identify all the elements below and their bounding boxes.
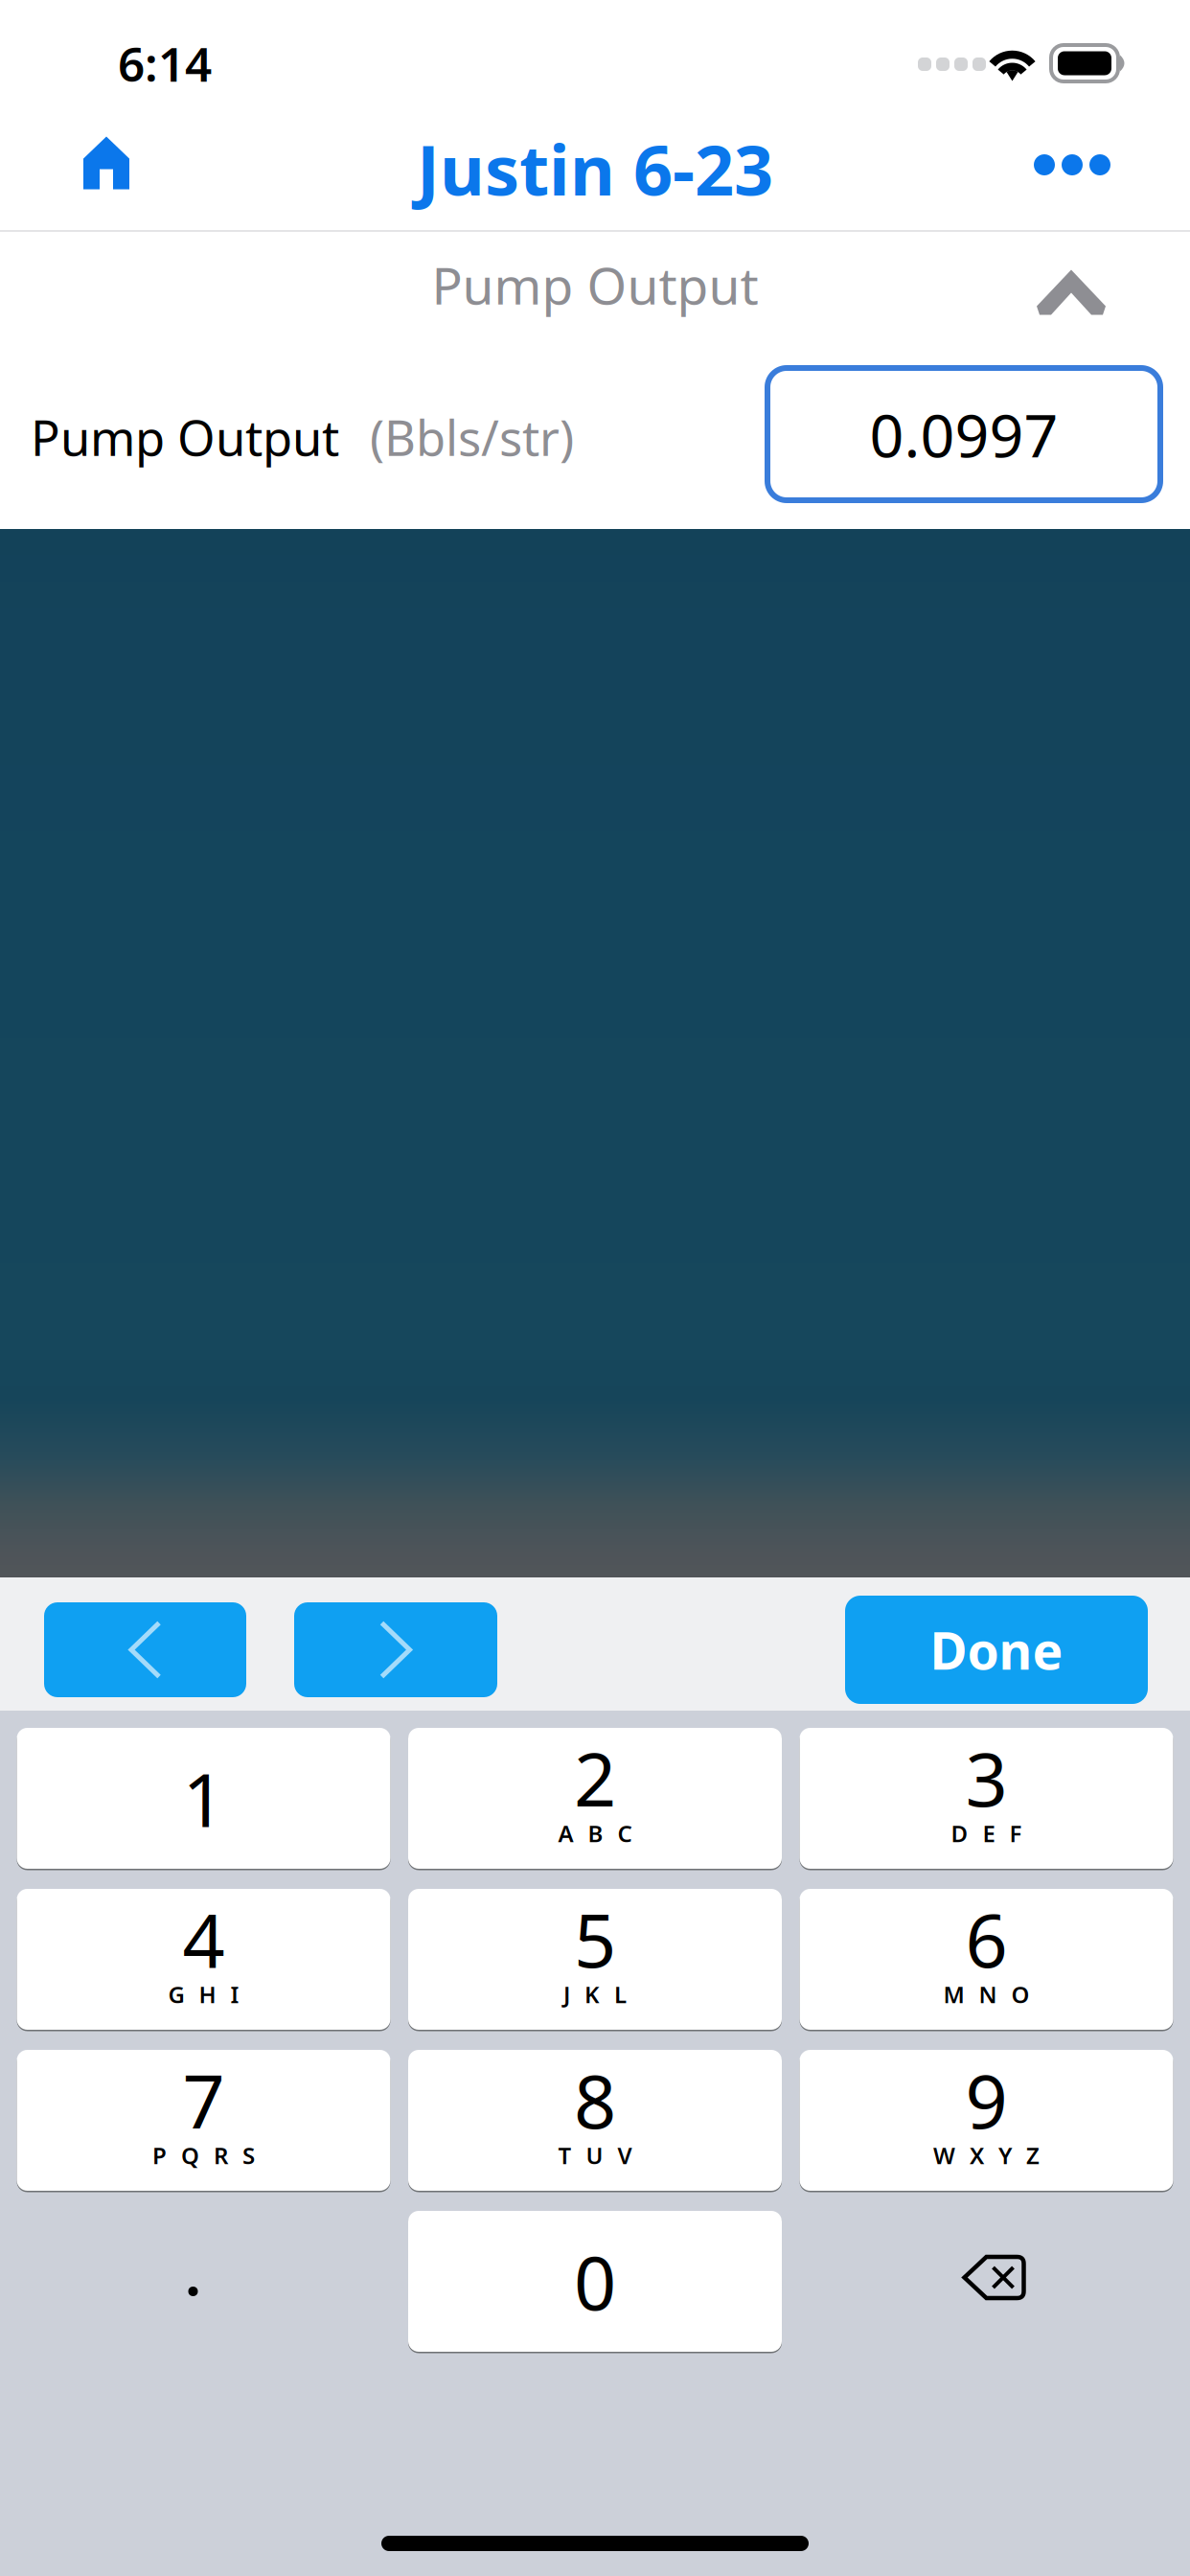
button[interactable]: 8: [408, 2050, 782, 2191]
button[interactable]: Delete: [800, 2211, 1173, 2352]
staticText: 2: [574, 1729, 616, 1827]
staticText: 6: [965, 1890, 1007, 1988]
staticText: Done: [930, 1616, 1063, 1684]
staticText: WXYZ: [933, 2140, 1040, 2171]
button[interactable]: 0.0997: [767, 368, 1160, 500]
button[interactable]: 9: [800, 2050, 1173, 2191]
button[interactable]: 0: [408, 2211, 782, 2352]
staticText: 3: [965, 1729, 1007, 1827]
staticText: Justin 6-23: [417, 123, 773, 214]
button[interactable]: 2: [408, 1728, 782, 1869]
staticText: 9: [965, 2051, 1007, 2149]
button[interactable]: 4: [17, 1889, 390, 2030]
staticText: Pump Output: [31, 405, 339, 469]
staticText: MNO: [943, 1979, 1030, 2010]
staticText: Pump Output: [432, 251, 758, 319]
button[interactable]: Collapse section: [1002, 232, 1140, 314]
staticText: 6:14: [118, 32, 212, 95]
staticText: 8: [574, 2051, 616, 2149]
staticText: 0.0997: [870, 394, 1058, 474]
staticText: 7: [183, 2051, 225, 2149]
staticText: (Bbls/str): [370, 405, 574, 469]
staticText: TUV: [558, 2140, 632, 2171]
button[interactable]: 1: [17, 1728, 390, 1869]
button[interactable]: Previous field: [44, 1602, 246, 1697]
button[interactable]: 3: [800, 1728, 1173, 1869]
staticText: GHI: [168, 1979, 239, 2010]
staticText: 4: [183, 1890, 225, 1988]
button[interactable]: Decimal point: [17, 2211, 390, 2352]
button[interactable]: Next field: [294, 1602, 497, 1697]
staticText: JKL: [563, 1979, 627, 2010]
staticText: 5: [574, 1890, 616, 1988]
staticText: ABC: [558, 1818, 632, 1849]
staticText: DEF: [951, 1818, 1022, 1849]
button[interactable]: More options: [999, 114, 1145, 216]
button[interactable]: 6: [800, 1889, 1173, 2030]
button[interactable]: 5: [408, 1889, 782, 2030]
staticText: 1: [183, 1749, 225, 1848]
button[interactable]: 7: [17, 2050, 390, 2191]
button[interactable]: Home: [49, 112, 164, 214]
staticText: PQRS: [152, 2140, 255, 2171]
staticText: 0: [574, 2232, 616, 2331]
button[interactable]: Done: [845, 1596, 1148, 1704]
